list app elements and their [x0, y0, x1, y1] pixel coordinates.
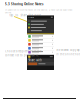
staticText: 5.3 Sharing Online Notes: [5, 2, 43, 6]
staticText: tap to share the note: [9, 14, 40, 17]
staticText: contact list to publish it.: [5, 54, 39, 57]
staticText: In addition to storing notes on the devi…: [5, 8, 72, 14]
staticText: Share with: [28, 58, 42, 62]
staticText: The shared copy appears: [56, 48, 80, 52]
staticText: Notes: [28, 16, 34, 19]
staticText: in the online notebook.: [56, 52, 80, 56]
staticText: Choose a recipient from the: [5, 50, 41, 53]
